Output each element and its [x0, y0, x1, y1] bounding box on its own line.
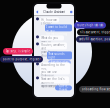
staticText: That sounds right [48, 52, 64, 59]
staticText: Routes, weather, and pace from a shortli… [41, 43, 65, 57]
staticText: Tap step, is simple [5, 49, 30, 53]
button[interactable]: point to purpose, register [0, 56, 43, 62]
staticText: Next are the list's actions or agreement… [41, 77, 64, 88]
button[interactable]: nils assessment, trigger [77, 29, 110, 35]
staticText: Got it, thanks [59, 84, 68, 91]
button[interactable]: Got it, thanks [55, 85, 72, 90]
staticText: I want to build an app for my running cl… [46, 25, 67, 39]
button[interactable]: onboarding flow stepper [79, 86, 110, 92]
button[interactable]: Start the plan [48, 60, 71, 65]
staticText: routes high tab tab [76, 23, 103, 27]
staticText: According to the HIG, you can use Dialog… [41, 63, 67, 88]
staticText: Start the plan [50, 61, 68, 64]
staticText: cards fill assertion, positive [78, 37, 110, 41]
staticText: What do you want to track? [41, 36, 58, 47]
staticText: point to purpose, register [2, 57, 40, 61]
button[interactable]: Tap step, is simple [3, 48, 33, 54]
staticText: onboarding flow stepper [81, 87, 110, 91]
button[interactable]: cards fill assertion, positive [76, 36, 110, 42]
staticText: Hi, how can I help? [41, 18, 57, 25]
staticText: Claude Assistant [43, 10, 65, 14]
button[interactable]: routes high tab tab [74, 22, 106, 28]
staticText: nils assessment, trigger [79, 30, 110, 34]
button[interactable]: Back [35, 10, 38, 14]
